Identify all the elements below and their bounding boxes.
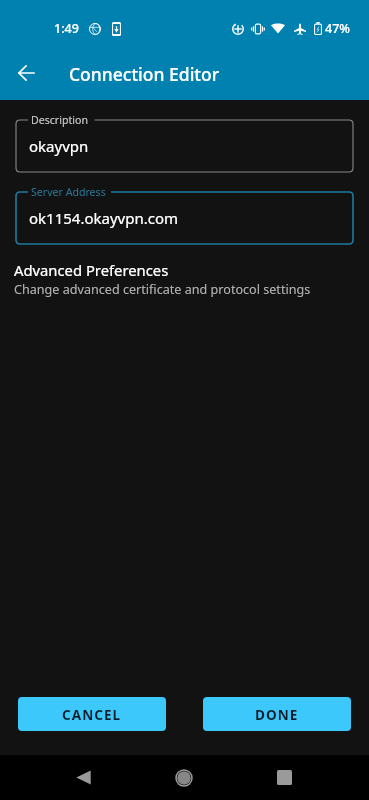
button[interactable]: Description — [16, 120, 353, 172]
staticText: DONE — [255, 705, 299, 724]
staticText: okayvpn — [29, 136, 89, 156]
staticText: Description — [31, 113, 89, 127]
staticText: Connection Editor — [69, 62, 220, 86]
staticText: Advanced Preferences — [14, 260, 169, 280]
button[interactable]: DONE — [203, 697, 351, 731]
staticText: ok1154.okayvpn.com — [29, 208, 179, 228]
staticText: 47% — [325, 20, 350, 37]
button[interactable]: Back — [0, 47, 50, 97]
button[interactable]: Advanced Preferences — [0, 258, 369, 300]
button[interactable]: Back — [60, 755, 106, 800]
staticText: Server Address — [31, 185, 106, 199]
button[interactable]: Recent apps — [261, 755, 307, 800]
button[interactable]: CANCEL — [18, 697, 166, 731]
staticText: CANCEL — [62, 705, 122, 724]
button[interactable]: Server Address — [16, 192, 353, 244]
staticText: Change advanced certificate and protocol… — [14, 281, 311, 298]
staticText: 1:49 — [54, 20, 79, 37]
button[interactable]: Home — [161, 755, 207, 800]
